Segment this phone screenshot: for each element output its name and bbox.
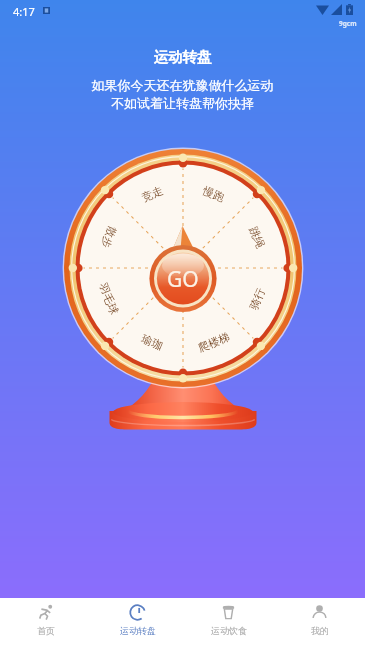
button[interactable]: 运动饮食 [183, 598, 274, 636]
staticText: 运动饮食 [211, 625, 247, 636]
staticText: 如果你今天还在犹豫做什么运动 不如试着让转盘帮你抉择 [0, 77, 365, 112]
button[interactable]: 运动转盘 [92, 598, 183, 636]
staticText: 首页 [37, 625, 55, 636]
staticText: 9gcm [339, 19, 357, 28]
button[interactable]: 首页 [0, 598, 92, 636]
button[interactable]: 我的 [274, 598, 365, 636]
staticText: 运动转盘 [120, 625, 156, 636]
staticText: 我的 [311, 625, 329, 636]
staticText: 4:17 [13, 4, 35, 19]
staticText: 运动转盘 [0, 48, 365, 66]
